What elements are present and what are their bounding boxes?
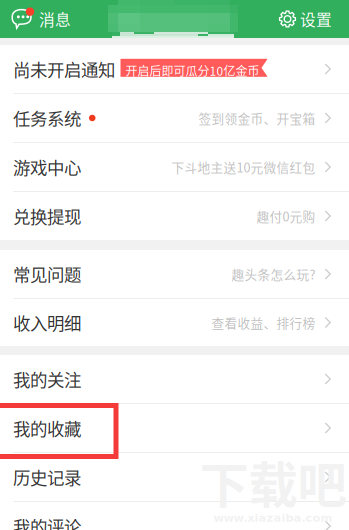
staticText: 下载吧 (199, 446, 346, 517)
staticText: 我的关注 (13, 366, 81, 392)
staticText: 我的评论 (13, 513, 81, 530)
button[interactable]: 我的收藏 (0, 404, 349, 452)
staticText: 设置 (300, 8, 332, 30)
staticText: 常见问题 (13, 261, 81, 287)
button[interactable]: 任务系统 (0, 94, 349, 142)
button[interactable]: 常见问题 (0, 250, 349, 298)
button[interactable]: 尚未开启通知 (0, 45, 349, 93)
button[interactable]: 我的评论 (0, 502, 349, 530)
staticText: 尚未开启通知 (13, 56, 115, 82)
button[interactable]: 我的关注 (0, 355, 349, 403)
staticText: 查看收益、排行榜 (211, 313, 315, 332)
staticText: 签到领金币、开宝箱 (198, 109, 315, 127)
staticText: 收入明细 (13, 310, 81, 335)
staticText: 历史记录 (13, 464, 81, 490)
staticText: 开启后即可瓜分10亿金币 (125, 62, 259, 79)
staticText: 兑换提现 (13, 203, 81, 229)
staticText: 消息 (39, 8, 71, 30)
button[interactable]: 设置 (279, 0, 349, 38)
staticText: 任务系统 (13, 105, 81, 131)
button[interactable]: 历史记录 (0, 453, 349, 501)
staticText: 趣付0元购 (256, 207, 315, 225)
button[interactable]: 消息 (0, 0, 71, 38)
button[interactable]: 兑换提现 (0, 192, 349, 240)
staticText: 趣头条怎么玩? (231, 265, 315, 283)
button[interactable]: 游戏中心 (0, 143, 349, 191)
staticText: 游戏中心 (13, 154, 81, 180)
staticText: 下斗地主送10元微信红包 (171, 158, 315, 176)
staticText: 我的收藏 (13, 415, 81, 441)
staticText: www.xiazaiba.com (213, 511, 332, 524)
button[interactable]: 收入明细 (0, 299, 349, 346)
